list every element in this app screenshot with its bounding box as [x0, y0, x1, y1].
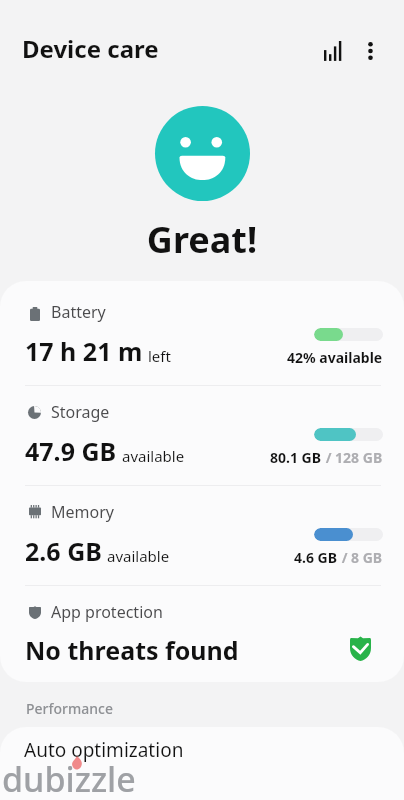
staticText: Battery: [51, 301, 106, 323]
staticText: / 128 GB: [322, 448, 383, 467]
staticText: Storage: [51, 401, 110, 423]
button[interactable]: Device care: [8, 22, 178, 74]
staticText: Performance: [26, 699, 113, 718]
staticText: Memory: [51, 501, 114, 523]
button[interactable]: More options: [349, 29, 392, 72]
staticText: Device care: [22, 32, 159, 65]
staticText: 42% available: [287, 348, 383, 367]
staticText: 4.6 GB: [294, 548, 338, 567]
staticText: 2.6 GB: [25, 534, 102, 568]
staticText: 47.9 GB: [25, 434, 117, 468]
staticText: Great!: [0, 215, 404, 264]
button[interactable]: Battery: [0, 281, 404, 381]
staticText: 17 h 21 m: [25, 334, 143, 368]
staticText: available: [107, 546, 170, 566]
button[interactable]: Storage: [0, 381, 404, 481]
button[interactable]: App protection: [0, 581, 404, 682]
staticText: App protection: [51, 601, 163, 623]
button[interactable]: Memory: [0, 481, 404, 581]
staticText: No threats found: [25, 633, 239, 667]
button[interactable]: Auto optimization: [0, 727, 404, 800]
staticText: available: [122, 446, 185, 466]
staticText: left: [148, 346, 171, 366]
staticText: dubizzle: [2, 756, 136, 800]
staticText: 80.1 GB: [270, 448, 322, 467]
staticText: Auto optimization: [24, 737, 184, 763]
staticText: / 8 GB: [338, 548, 383, 567]
button[interactable]: Usage statistics: [311, 29, 354, 72]
